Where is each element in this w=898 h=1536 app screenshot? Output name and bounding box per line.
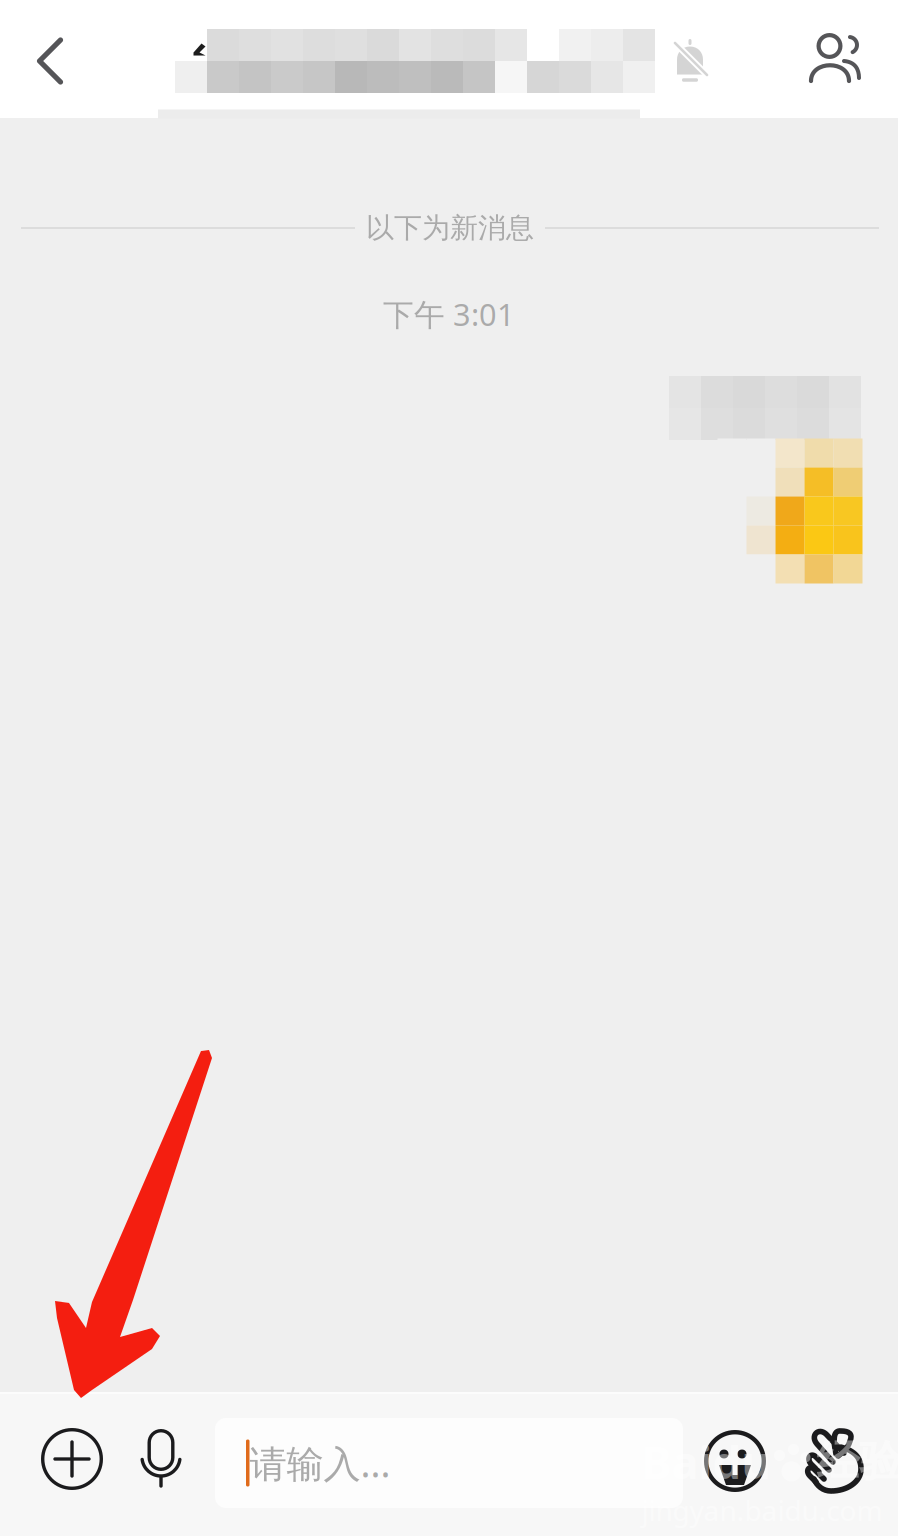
- button[interactable]: Stickers: [789, 1398, 877, 1520]
- button[interactable]: Group members: [786, 1, 886, 119]
- staticText: 经验: [816, 1435, 898, 1488]
- staticText: jingyan.baidu.com: [641, 1491, 882, 1529]
- button[interactable]: More options: [24, 1398, 120, 1520]
- button[interactable]: 请输入...: [215, 1418, 683, 1508]
- button[interactable]: Emoji keyboard: [691, 1400, 779, 1522]
- staticText: 下午 3:01: [383, 294, 515, 334]
- staticText: 以下为新消息: [366, 211, 534, 245]
- button[interactable]: Back: [2, 2, 98, 120]
- staticText: 请输入...: [249, 1438, 390, 1488]
- staticText: Baidu: [641, 1431, 770, 1491]
- button[interactable]: Voice message: [121, 1398, 201, 1520]
- button[interactable]: Notifications muted: [650, 0, 730, 117]
